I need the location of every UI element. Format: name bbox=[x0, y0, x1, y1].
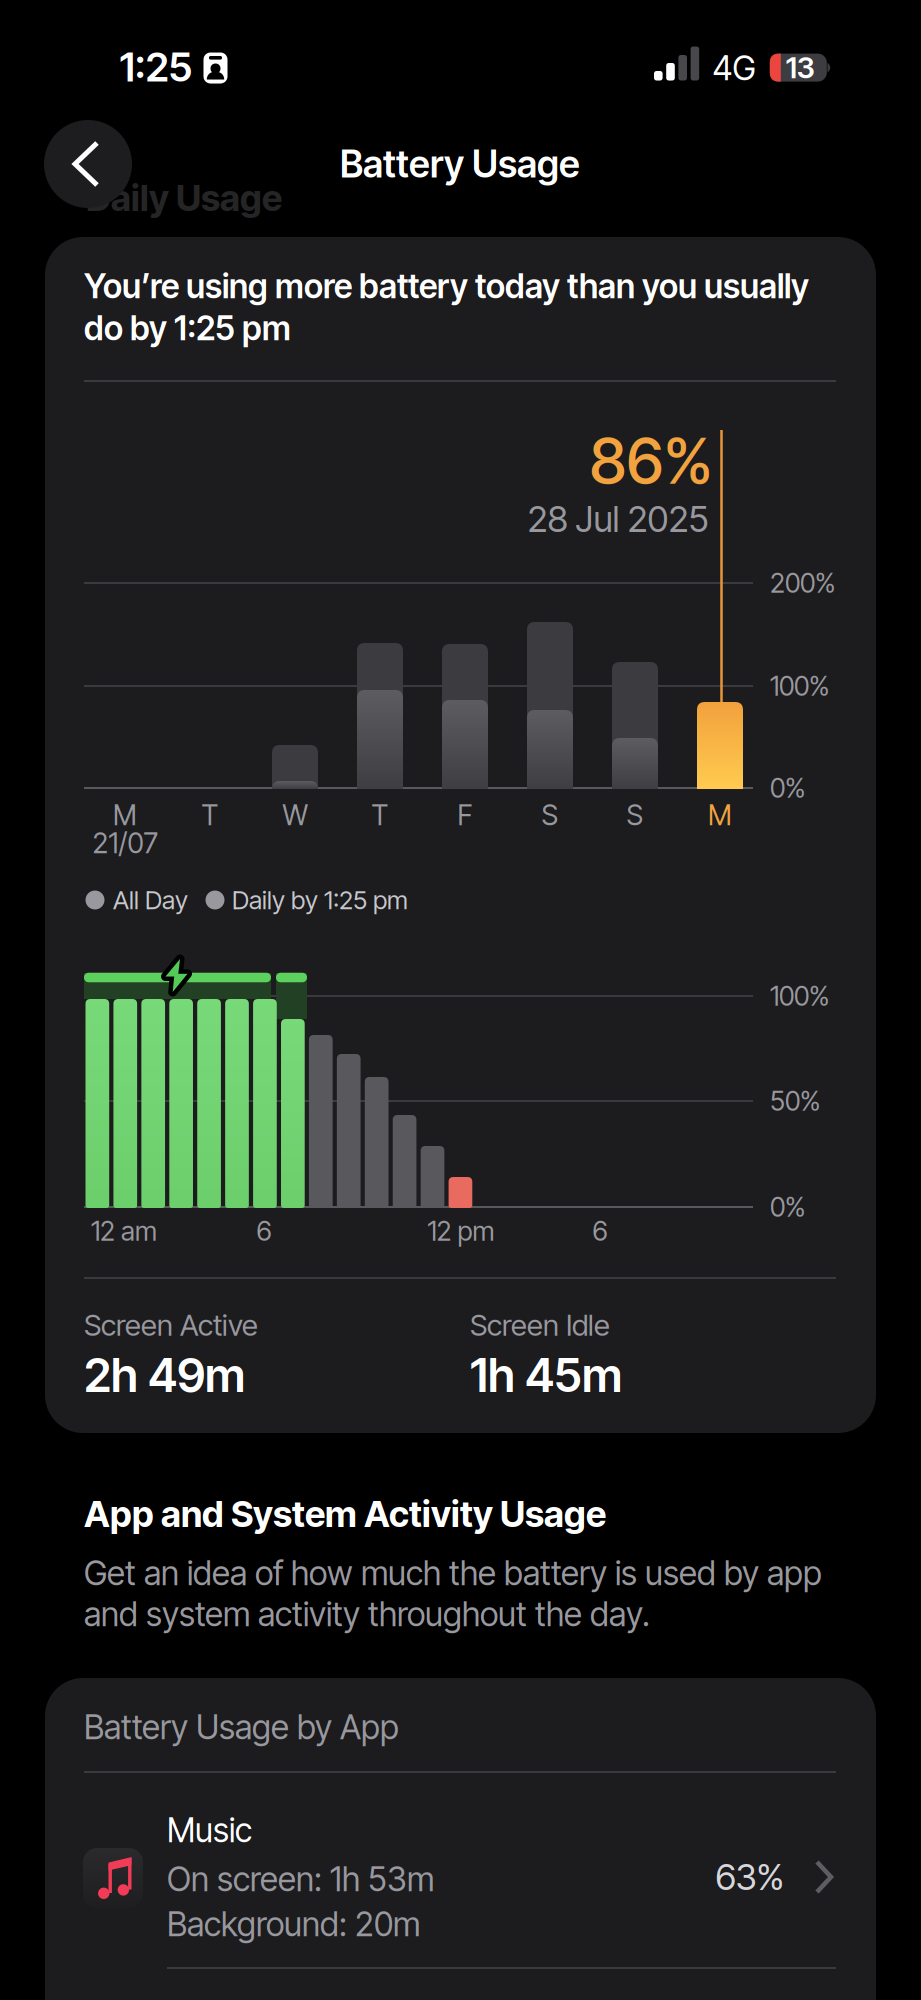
staticText: Music bbox=[167, 1810, 252, 1850]
staticText: App and System Activity Usage bbox=[84, 1493, 606, 1535]
staticText: T bbox=[201, 798, 218, 831]
staticText: M bbox=[708, 798, 732, 831]
staticText: Screen Idle bbox=[470, 1308, 610, 1342]
staticText: Screen Active bbox=[84, 1308, 258, 1342]
staticText: 6 bbox=[592, 1215, 607, 1247]
staticText: F bbox=[457, 798, 472, 831]
staticText: and system activity throughout the day. bbox=[84, 1594, 650, 1634]
staticText: Battery Usage by App bbox=[84, 1707, 399, 1747]
staticText: All Day bbox=[113, 885, 188, 915]
staticText: do by 1:25 pm bbox=[84, 308, 291, 348]
staticText: M bbox=[113, 798, 137, 831]
staticText: Daily by 1:25 pm bbox=[232, 885, 408, 915]
staticText: 12 pm bbox=[427, 1215, 494, 1247]
staticText: 50% bbox=[770, 1085, 820, 1117]
staticText: 28 Jul 2025 bbox=[527, 498, 708, 540]
button[interactable]: Back bbox=[44, 120, 132, 208]
button[interactable]: Music bbox=[45, 1778, 836, 1954]
staticText: 86% bbox=[589, 424, 712, 498]
staticText: T bbox=[371, 798, 388, 831]
staticText: 21/07 bbox=[92, 826, 157, 859]
staticText: 6 bbox=[256, 1215, 271, 1247]
staticText: 12 am bbox=[91, 1215, 157, 1247]
staticText: 2h 49m bbox=[84, 1347, 245, 1403]
staticText: On screen: 1h 53m bbox=[167, 1859, 434, 1899]
staticText: 0% bbox=[770, 1191, 805, 1223]
staticText: 13 bbox=[786, 50, 815, 85]
staticText: 0% bbox=[770, 772, 805, 804]
staticText: 4G bbox=[712, 48, 755, 88]
staticText: Battery Usage bbox=[340, 142, 580, 186]
staticText: 200% bbox=[770, 567, 835, 599]
staticText: S bbox=[541, 798, 558, 831]
staticText: W bbox=[282, 798, 307, 831]
staticText: Get an idea of how much the battery is u… bbox=[84, 1553, 822, 1593]
staticText: Daily Usage bbox=[86, 177, 282, 219]
staticText: 100% bbox=[770, 670, 829, 702]
staticText: S bbox=[626, 798, 643, 831]
staticText: 63% bbox=[715, 1856, 784, 1898]
staticText: 1:25 bbox=[119, 43, 192, 91]
staticText: 100% bbox=[770, 980, 829, 1012]
staticText: Background: 20m bbox=[167, 1904, 420, 1944]
staticText: You’re using more battery today than you… bbox=[84, 266, 809, 306]
staticText: 1h 45m bbox=[470, 1347, 622, 1403]
